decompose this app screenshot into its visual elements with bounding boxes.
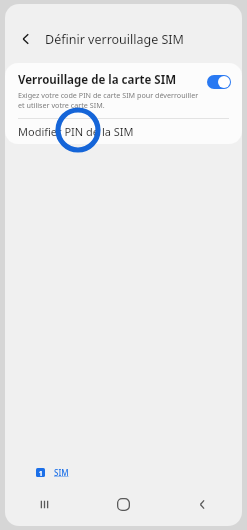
button[interactable]: Back xyxy=(13,26,39,52)
staticText: et utiliser votre carte SIM. xyxy=(18,100,105,110)
staticText: Exigez votre code PIN de carte SIM pour … xyxy=(18,90,199,100)
button[interactable]: Modifier PIN de la SIM xyxy=(5,119,242,144)
staticText: SIM xyxy=(54,467,69,478)
staticText: Définir verrouillage SIM xyxy=(45,31,184,48)
button[interactable]: Verrouillage de la carte SIM xyxy=(5,63,242,118)
button[interactable]: Back xyxy=(163,492,242,516)
button[interactable]: Recent apps xyxy=(5,492,84,516)
button[interactable]: 1 xyxy=(36,465,69,480)
button[interactable]: Home xyxy=(84,492,163,516)
staticText: 1 xyxy=(39,469,43,477)
staticText: Modifier PIN de la SIM xyxy=(18,124,134,139)
staticText: Verrouillage de la carte SIM xyxy=(18,72,177,88)
button[interactable]: SIM card lock toggle, on xyxy=(207,75,231,89)
